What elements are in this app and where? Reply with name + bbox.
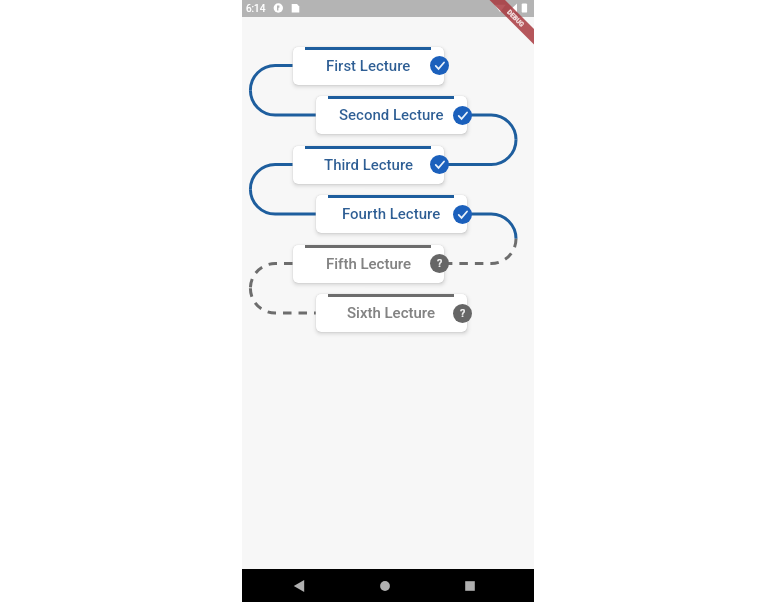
button[interactable]: Completed — [453, 106, 472, 125]
button[interactable]: Third Lecture — [293, 146, 444, 184]
button[interactable]: Back — [284, 571, 314, 601]
button[interactable]: Completed — [430, 155, 449, 174]
button[interactable]: First Lecture — [293, 47, 444, 85]
staticText: ? — [460, 307, 466, 320]
staticText: 6:14 — [246, 3, 266, 15]
button[interactable]: Home — [370, 571, 400, 601]
staticText: Sixth Lecture — [347, 304, 436, 322]
button[interactable]: Recents — [455, 571, 485, 601]
button[interactable]: Second Lecture — [316, 96, 467, 134]
button[interactable]: Fourth Lecture — [316, 195, 467, 233]
button[interactable]: Sixth Lecture — [316, 294, 467, 332]
staticText: Fourth Lecture — [342, 205, 441, 223]
button[interactable]: Fifth Lecture — [293, 245, 444, 283]
staticText: Second Lecture — [339, 106, 444, 124]
staticText: Third Lecture — [324, 156, 414, 174]
staticText: ? — [437, 257, 443, 270]
staticText: First Lecture — [326, 57, 411, 75]
button[interactable]: Completed — [453, 205, 472, 224]
button[interactable]: Locked — [430, 254, 449, 273]
button[interactable]: Completed — [430, 56, 449, 75]
button[interactable]: Locked — [453, 304, 472, 323]
staticText: Fifth Lecture — [326, 255, 411, 273]
